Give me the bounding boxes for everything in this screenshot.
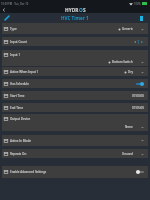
staticText: Enable Advanced Settings	[10, 170, 47, 174]
staticText: Generic	[122, 27, 133, 31]
button[interactable]: Save	[137, 14, 145, 22]
button[interactable]: Active In Mode	[2, 135, 148, 146]
button[interactable]: End Time	[2, 103, 148, 112]
staticText: 1	[137, 39, 140, 45]
button[interactable]: Input 1	[2, 50, 148, 66]
staticText: Start Time	[10, 94, 25, 98]
staticText: HVC Timer 1	[61, 15, 89, 21]
staticText: Has Schedule	[10, 82, 29, 86]
button[interactable]: Select option	[133, 139, 144, 142]
staticText: Output Device	[10, 117, 31, 121]
staticText: O	[79, 7, 83, 13]
staticText: Type	[10, 27, 17, 31]
staticText: Input Count	[10, 40, 27, 44]
button[interactable]: Generic	[118, 27, 144, 31]
button[interactable]: Type	[2, 23, 148, 34]
button[interactable]: Unused	[122, 152, 144, 156]
button[interactable]: Input Count	[2, 37, 148, 46]
button[interactable]: Bottom Switch	[108, 60, 144, 64]
button[interactable]: Repeats On	[2, 149, 148, 158]
button[interactable]: Increase	[140, 40, 144, 44]
staticText: Input 1	[10, 53, 21, 57]
staticText: Active In Mode	[10, 139, 31, 143]
button[interactable]: Enable Advanced Settings	[2, 166, 148, 178]
staticText: HYDR	[65, 7, 79, 13]
button[interactable]: Dry	[124, 70, 144, 74]
button[interactable]: Start Time	[2, 91, 148, 100]
staticText: None	[125, 125, 133, 129]
staticText: Unused	[122, 152, 133, 156]
button[interactable]: None	[125, 125, 144, 129]
button[interactable]: Back	[1, 7, 7, 13]
button[interactable]: Decrease	[133, 40, 137, 44]
staticText: Active When Input 1	[10, 70, 39, 74]
staticText: 07:00:00	[132, 94, 144, 98]
staticText: 07:05:00	[132, 106, 144, 110]
staticText: Repeats On	[10, 152, 27, 156]
button[interactable]: Has Schedule	[2, 79, 148, 88]
staticText: 100%	[134, 2, 141, 6]
button[interactable]: Toggle	[136, 82, 144, 86]
staticText: S	[83, 7, 86, 13]
staticText: 10:09 PM Tue, Dec 10	[1, 2, 29, 6]
staticText: Dry	[128, 70, 133, 74]
button[interactable]: Toggle	[136, 170, 144, 174]
button[interactable]: Active When Input 1	[2, 67, 148, 76]
staticText: End Time	[10, 106, 24, 110]
staticText: Bottom Switch	[112, 60, 133, 64]
button[interactable]: Edit name	[2, 13, 11, 22]
button[interactable]: Output Device	[2, 114, 148, 131]
